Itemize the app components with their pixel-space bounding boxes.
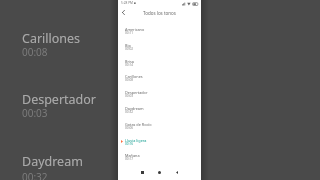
staticText: Todos los tonos <box>143 10 176 16</box>
staticText: 00:08 <box>22 45 48 59</box>
staticText: 00:11 <box>125 31 134 35</box>
staticText: Despertador <box>22 91 97 108</box>
button[interactable]: Despertador <box>118 88 201 103</box>
staticText: Mañana <box>125 153 140 158</box>
staticText: 00:03 <box>125 94 134 98</box>
button[interactable]: Brisa <box>118 57 201 72</box>
staticText: Carillones <box>125 74 143 79</box>
staticText: Gotas de Rocío <box>125 122 152 127</box>
staticText: Daydream <box>125 106 144 111</box>
staticText: 00:08 <box>125 78 134 82</box>
staticText: Daydream <box>22 153 83 170</box>
staticText: Despertador <box>125 90 148 95</box>
staticText: Carillones <box>22 30 81 47</box>
staticText: Lluvia ligera <box>125 138 147 143</box>
staticText: 00:02 <box>125 47 134 51</box>
button[interactable]: Lluvia ligera <box>118 136 201 151</box>
staticText: 00:14 <box>125 63 134 67</box>
button[interactable]: Daydream <box>118 104 201 119</box>
staticText: 5:28 PM ▪ <box>121 1 136 5</box>
button[interactable]: Americano <box>118 25 201 40</box>
staticText: 00:32 <box>125 110 134 114</box>
button[interactable]: Bip <box>118 41 201 56</box>
staticText: Americano <box>125 27 145 32</box>
staticText: 00:16 <box>125 142 134 146</box>
staticText: Brisa <box>125 59 134 64</box>
button[interactable] <box>153 166 166 178</box>
button[interactable]: Carillones <box>118 72 201 87</box>
button[interactable] <box>170 166 183 178</box>
button[interactable]: Mañana <box>118 151 201 166</box>
button[interactable]: Gotas de Rocío <box>118 120 201 135</box>
staticText: 00:17 <box>125 157 134 161</box>
staticText: Bip <box>125 43 131 48</box>
button[interactable] <box>118 7 132 19</box>
button[interactable] <box>136 166 149 178</box>
staticText: 00:03 <box>22 106 48 120</box>
staticText: 00:32 <box>22 170 48 180</box>
staticText: 00:06 <box>125 126 134 130</box>
